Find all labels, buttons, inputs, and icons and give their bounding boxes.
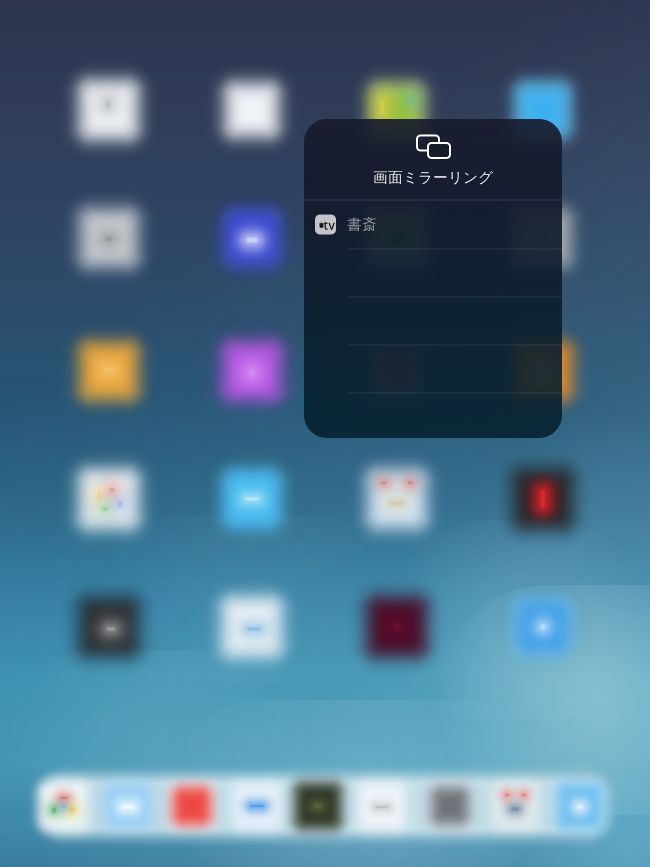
button[interactable]: tv — [304, 200, 562, 248]
staticText: 書斎 — [347, 215, 377, 233]
staticText: 画面ミラーリング — [373, 168, 493, 186]
staticText: tv — [323, 217, 334, 233]
button[interactable] — [304, 248, 562, 296]
button[interactable] — [304, 344, 562, 392]
button[interactable] — [304, 392, 562, 440]
